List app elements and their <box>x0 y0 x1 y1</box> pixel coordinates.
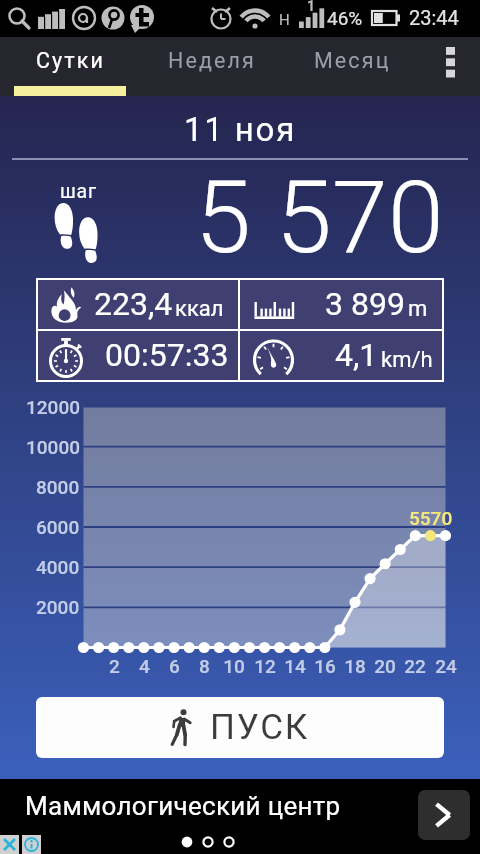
button[interactable]: ПУСК <box>36 697 444 758</box>
button[interactable]: 4,1 <box>240 331 442 380</box>
staticText: H <box>279 11 290 29</box>
button[interactable]: Сутки <box>0 37 140 96</box>
button[interactable]: Маммологический центр <box>0 779 480 854</box>
staticText: 6 <box>169 655 180 677</box>
staticText: 4000 <box>36 556 80 578</box>
staticText: ПУСК <box>210 707 310 748</box>
staticText: 8000 <box>36 476 80 498</box>
button[interactable]: 223,4 <box>38 280 238 329</box>
staticText: Сутки <box>36 48 106 73</box>
staticText: 5570 <box>409 507 453 529</box>
staticText: 11 ноя <box>184 110 297 146</box>
button[interactable]: Next ad <box>418 790 470 840</box>
staticText: km/h <box>381 347 433 373</box>
staticText: 18 <box>344 655 366 677</box>
button[interactable]: Месяц <box>281 37 421 96</box>
button[interactable]: Неделя <box>141 37 281 96</box>
staticText: 5 570 <box>195 158 444 276</box>
staticText: 4,1 <box>335 336 378 374</box>
staticText: 14 <box>284 655 306 677</box>
staticText: Маммологический центр <box>25 791 341 821</box>
staticText: 2000 <box>36 596 80 618</box>
staticText: 2 <box>109 655 120 677</box>
staticText: Месяц <box>314 48 391 73</box>
button[interactable]: More options <box>421 37 480 96</box>
staticText: 223,4 <box>94 285 173 323</box>
button[interactable]: 00:57:33 <box>38 331 238 380</box>
staticText: 00:57:33 <box>105 336 229 374</box>
staticText: 22 <box>404 655 426 677</box>
button[interactable]: 3 899 <box>240 280 442 329</box>
staticText: m <box>408 296 428 322</box>
staticText: 12 <box>254 655 276 677</box>
staticText: шаг <box>60 180 97 203</box>
staticText: 1 <box>307 0 316 14</box>
staticText: 16 <box>314 655 336 677</box>
staticText: 8 <box>199 655 210 677</box>
staticText: 10000 <box>26 436 80 458</box>
staticText: 12000 <box>26 396 80 418</box>
staticText: Неделя <box>168 48 256 73</box>
staticText: 10 <box>223 655 245 677</box>
staticText: 3 899 <box>325 285 405 323</box>
staticText: 23:44 <box>409 6 459 29</box>
staticText: 24 <box>435 655 457 677</box>
staticText: 4 <box>139 655 150 677</box>
staticText: ккал <box>175 296 224 322</box>
staticText: 6000 <box>36 516 80 538</box>
staticText: 46% <box>327 7 363 29</box>
staticText: 20 <box>374 655 396 677</box>
